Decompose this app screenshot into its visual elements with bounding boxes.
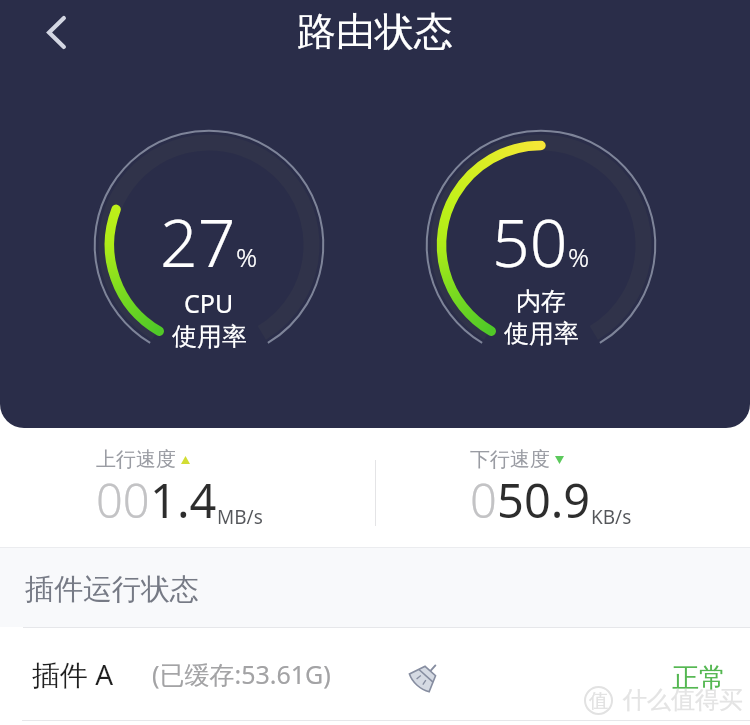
staticText: KB/s — [591, 504, 632, 530]
staticText: 路由状态 — [297, 7, 453, 56]
staticText: (已缓存:53.61G) — [152, 657, 331, 691]
staticText: % — [236, 239, 258, 274]
staticText: % — [568, 239, 590, 274]
staticText: CPU — [184, 286, 234, 320]
staticText: 插件运行状态 — [25, 571, 199, 608]
staticText: 下行速度 — [470, 447, 550, 472]
staticText: 50 — [492, 196, 568, 286]
button[interactable]: Back — [21, 0, 91, 67]
staticText: MB/s — [217, 504, 263, 530]
staticText: 0 — [470, 468, 497, 532]
staticText: 内存 — [516, 286, 566, 317]
button[interactable]: Clear cache — [402, 652, 446, 696]
staticText: 1.4 — [150, 468, 217, 532]
staticText: 上行速度 — [96, 447, 176, 472]
staticText: 50.9 — [497, 468, 591, 532]
button[interactable]: 插件 A — [0, 631, 750, 717]
staticText: 使用率 — [504, 318, 579, 349]
staticText: 使用率 — [172, 321, 247, 352]
staticText: 值 — [589, 689, 608, 713]
staticText: 插件 A — [32, 655, 114, 693]
staticText: 正常 — [672, 661, 726, 695]
staticText: 00 — [96, 468, 150, 532]
staticText: 什么值得买 — [623, 685, 743, 715]
staticText: 27 — [160, 196, 236, 286]
